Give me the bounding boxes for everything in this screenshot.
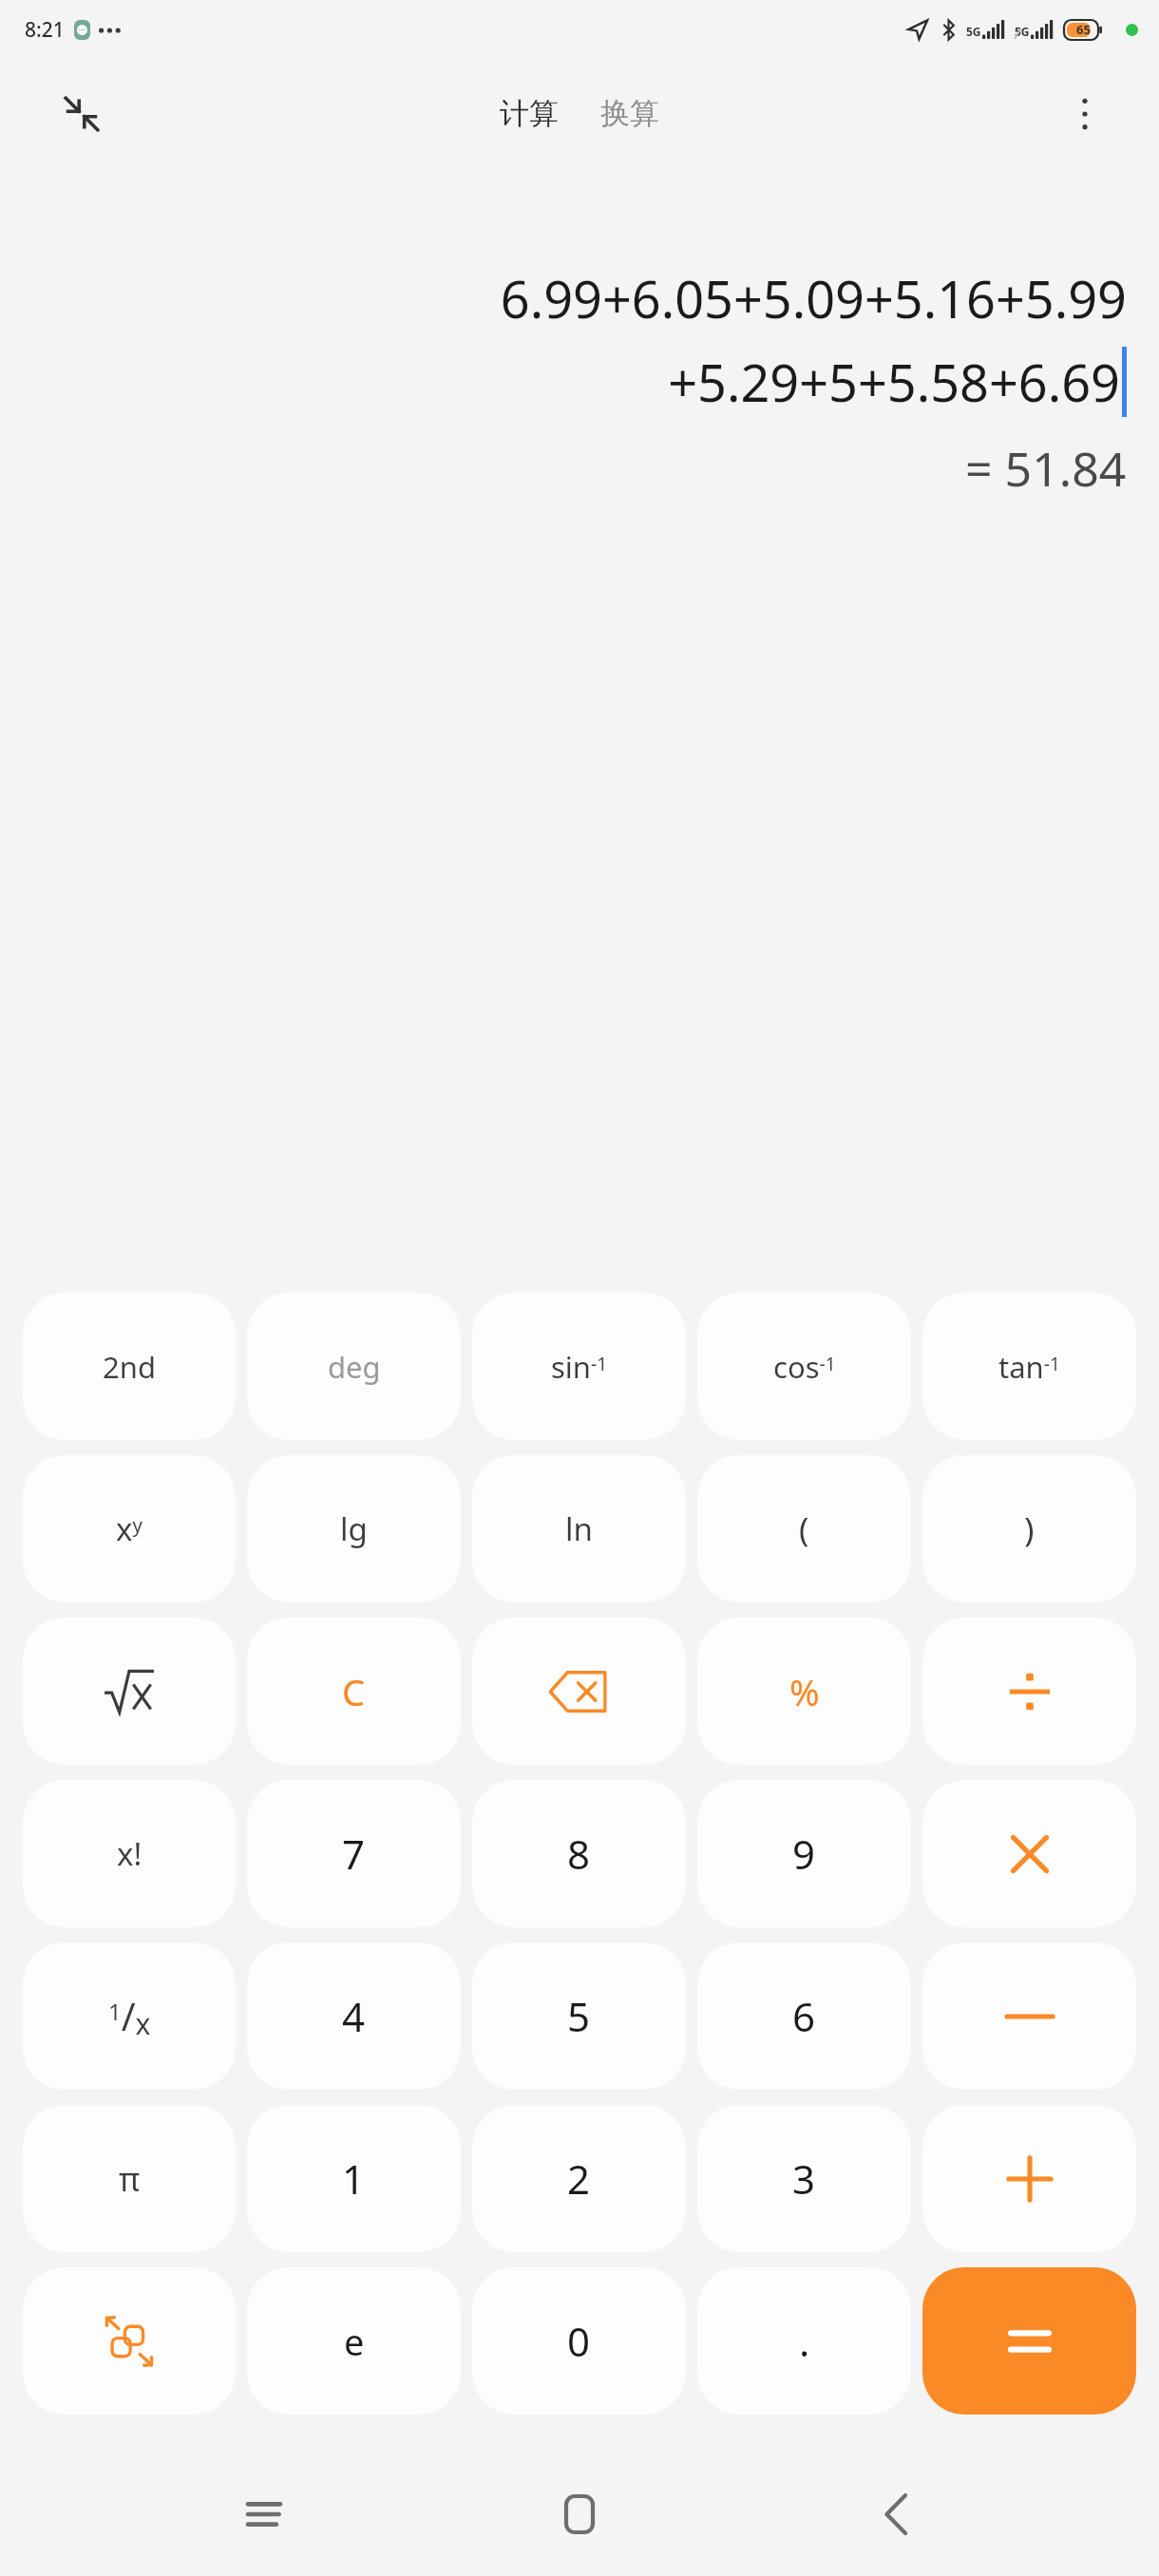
staticText: sin-1 [551,1347,608,1387]
staticText: lg [340,1507,368,1550]
button[interactable]: tan-1 [922,1293,1136,1440]
staticText: 5G [1015,24,1030,39]
staticText: 2 [567,2151,591,2206]
button[interactable]: C [247,1618,461,1765]
button[interactable]: Back [844,2462,948,2567]
staticText: 6.99+6.05+5.09+5.16+5.99 [500,263,1127,333]
button[interactable]: . [697,2267,911,2415]
button[interactable]: More options [1054,84,1115,144]
staticText: 1 [342,2151,366,2206]
staticText: C [342,1667,366,1716]
staticText: cos-1 [773,1347,836,1387]
button[interactable]: Multiply [922,1780,1136,1927]
button[interactable]: 换算 [591,89,669,138]
staticText: 5 [567,1989,591,2043]
button[interactable]: cos-1 [697,1293,911,1440]
staticText: 7 [342,1827,366,1881]
staticText: = 51.84 [965,436,1127,501]
staticText: ln [565,1507,593,1550]
button[interactable]: ln [472,1455,686,1602]
button[interactable]: Convert [23,2267,236,2415]
button[interactable]: 0 [472,2267,686,2415]
staticText: x! [117,1832,142,1875]
staticText: 6 [792,1989,816,2043]
staticText: 4 [342,1989,366,2043]
staticText: 2nd [103,1347,156,1387]
staticText: 65 [1076,21,1091,38]
button[interactable]: 9 [697,1780,911,1927]
staticText: 1/x [108,1990,151,2042]
button[interactable]: π [23,2105,236,2252]
button[interactable]: 7 [247,1780,461,1927]
staticText: % [789,1667,820,1716]
button[interactable]: 4 [247,1942,461,2090]
button[interactable]: deg [247,1293,461,1440]
button[interactable]: 2nd [23,1293,236,1440]
staticText: 5G [966,24,981,39]
button[interactable]: 2 [472,2105,686,2252]
button[interactable]: Equals [922,2267,1136,2415]
staticText: . [799,2314,810,2368]
button[interactable]: xy [23,1455,236,1602]
staticText: 0 [567,2314,591,2368]
button[interactable]: 3 [697,2105,911,2252]
staticText: 8 [567,1827,591,1881]
button[interactable]: 1 [247,2105,461,2252]
staticText: e [344,2317,365,2366]
button[interactable]: e [247,2267,461,2415]
button[interactable]: One over x [23,1942,236,2090]
button[interactable]: sin-1 [472,1293,686,1440]
button[interactable]: 计算 [490,89,568,138]
staticText: 9 [792,1827,816,1881]
staticText: ( [799,1506,809,1552]
staticText: 计算 [500,95,559,132]
button[interactable]: x! [23,1780,236,1927]
staticText: +5.29+5+5.58+6.69 [668,347,1120,417]
staticText: xy [116,1507,142,1550]
button[interactable]: Divide [922,1618,1136,1765]
button[interactable]: 5 [472,1942,686,2090]
button[interactable]: 6 [697,1942,911,2090]
staticText: 3 [792,2151,816,2206]
button[interactable]: ( [697,1455,911,1602]
button[interactable]: % [697,1618,911,1765]
staticText: deg [328,1347,381,1387]
button[interactable]: Collapse [49,82,114,146]
staticText: ) [1024,1506,1035,1552]
staticText: tan-1 [998,1347,1060,1387]
button[interactable]: Square root [23,1618,236,1765]
staticText: π [119,2157,141,2201]
button[interactable]: 8 [472,1780,686,1927]
staticText: 8:21 [25,16,65,44]
button[interactable]: lg [247,1455,461,1602]
button[interactable]: ) [922,1455,1136,1602]
button[interactable]: Home [527,2462,632,2567]
button[interactable]: Plus [922,2105,1136,2252]
staticText: 换算 [600,95,659,132]
button[interactable]: Minus [922,1942,1136,2090]
button[interactable]: Recent apps [212,2462,316,2567]
button[interactable]: Backspace [472,1618,686,1765]
